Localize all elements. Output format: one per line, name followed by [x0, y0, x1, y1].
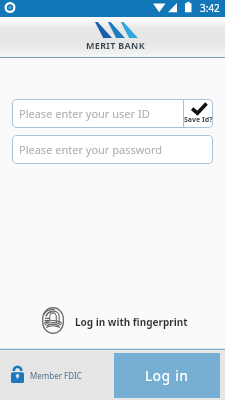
staticText: Log in with fingerprint: [75, 315, 188, 329]
button[interactable]: Save Id: [184, 99, 213, 128]
button[interactable]: Log in: [114, 353, 220, 398]
staticText: Save Id?: [184, 115, 213, 125]
staticText: Member FDIC: [30, 370, 82, 381]
staticText: Log in: [145, 367, 189, 385]
staticText: 3:42: [200, 1, 220, 15]
button[interactable]: Please enter your password: [12, 135, 213, 164]
staticText: Please enter your user ID: [19, 106, 183, 121]
button[interactable]: Member FDIC: [11, 367, 82, 384]
staticText: MERIT BANK: [86, 39, 145, 51]
button[interactable]: Log in with fingerprint: [0, 304, 225, 337]
button[interactable]: Please enter your user ID: [12, 99, 213, 128]
staticText: Please enter your password: [19, 142, 163, 157]
